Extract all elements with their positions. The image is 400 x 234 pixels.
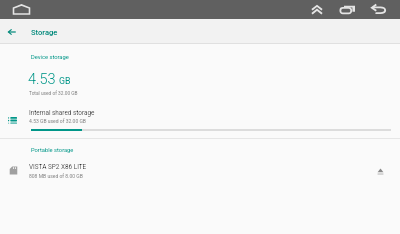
other: Internal storage — [8, 117, 17, 124]
staticText: 4.53 — [28, 71, 56, 88]
staticText: GB — [59, 76, 71, 86]
button[interactable]: Back — [370, 3, 389, 16]
staticText: Device storage — [31, 54, 69, 61]
button[interactable]: Eject — [371, 162, 389, 180]
staticText: 4.53 GB used of 32.00 GB — [29, 118, 86, 124]
staticText: Internal shared storage — [29, 109, 95, 117]
button[interactable]: Navigate up — [1, 21, 22, 42]
button[interactable]: Expand status bar — [310, 3, 324, 16]
staticText: Storage — [31, 28, 58, 37]
staticText: VISTA SP2 X86 LITE — [29, 163, 87, 171]
staticText: 808 MB used of 8.00 GB — [29, 173, 83, 179]
staticText: Total used of 32.00 GB — [29, 91, 78, 97]
button[interactable]: Recent apps — [338, 3, 358, 16]
staticText: Portable storage — [31, 147, 74, 154]
button[interactable]: Home — [11, 3, 31, 16]
